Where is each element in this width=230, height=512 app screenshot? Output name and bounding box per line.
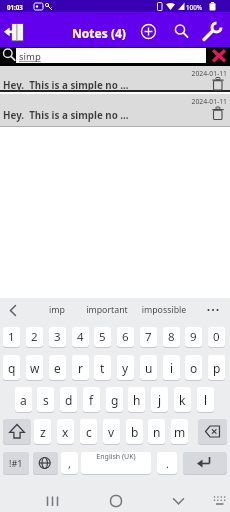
staticText: impossible — [134, 304, 194, 317]
staticText: m — [174, 424, 186, 440]
staticText: Notes (4) — [53, 25, 145, 40]
staticText: 2 — [31, 329, 38, 345]
staticText: w — [30, 360, 40, 376]
staticText: 2024-01-11 — [150, 69, 227, 77]
staticText: Hey. This is a simple no ... — [3, 109, 129, 122]
staticText: 0 — [213, 329, 220, 345]
staticText: k — [179, 392, 186, 408]
staticText: l — [204, 392, 208, 408]
staticText: s — [43, 392, 49, 408]
staticText: t — [100, 360, 105, 376]
staticText: 01:03 — [7, 3, 23, 11]
staticText: imp — [37, 304, 77, 317]
staticText: x — [62, 424, 69, 440]
staticText: i — [170, 360, 174, 376]
staticText: 7 — [145, 329, 152, 345]
staticText: q — [8, 360, 16, 376]
staticText: r — [78, 360, 83, 376]
staticText: 4 — [77, 329, 84, 345]
staticText: 6 — [122, 329, 129, 345]
staticText: g — [111, 392, 119, 408]
staticText: j — [158, 392, 162, 408]
staticText: u — [145, 360, 153, 376]
staticText: n — [153, 424, 161, 440]
staticText: z — [40, 424, 46, 440]
staticText: 5 — [99, 329, 106, 345]
staticText: d — [65, 392, 73, 408]
staticText: simp — [19, 50, 41, 63]
staticText: 100% — [186, 3, 203, 12]
staticText: important — [77, 304, 137, 317]
staticText: !#1 — [9, 457, 23, 469]
staticText: o — [190, 360, 198, 376]
staticText: c — [86, 424, 92, 440]
staticText: , — [68, 456, 71, 471]
staticText: y — [122, 360, 129, 376]
staticText: e — [54, 360, 61, 376]
staticText: h — [133, 392, 141, 408]
staticText: 1 — [8, 329, 15, 345]
staticText: English (UK) — [81, 452, 151, 474]
staticText: b — [131, 424, 139, 440]
staticText: 3 — [54, 329, 61, 345]
staticText: f — [89, 392, 94, 408]
staticText: . — [166, 456, 169, 471]
staticText: a — [20, 392, 27, 408]
staticText: Hey. This is a simple no ... — [3, 79, 129, 92]
staticText: 9 — [190, 329, 197, 345]
staticText: 2024-01-11 — [150, 97, 227, 105]
staticText: p — [213, 360, 221, 376]
staticText: 8 — [168, 329, 175, 345]
staticText: v — [108, 424, 115, 440]
